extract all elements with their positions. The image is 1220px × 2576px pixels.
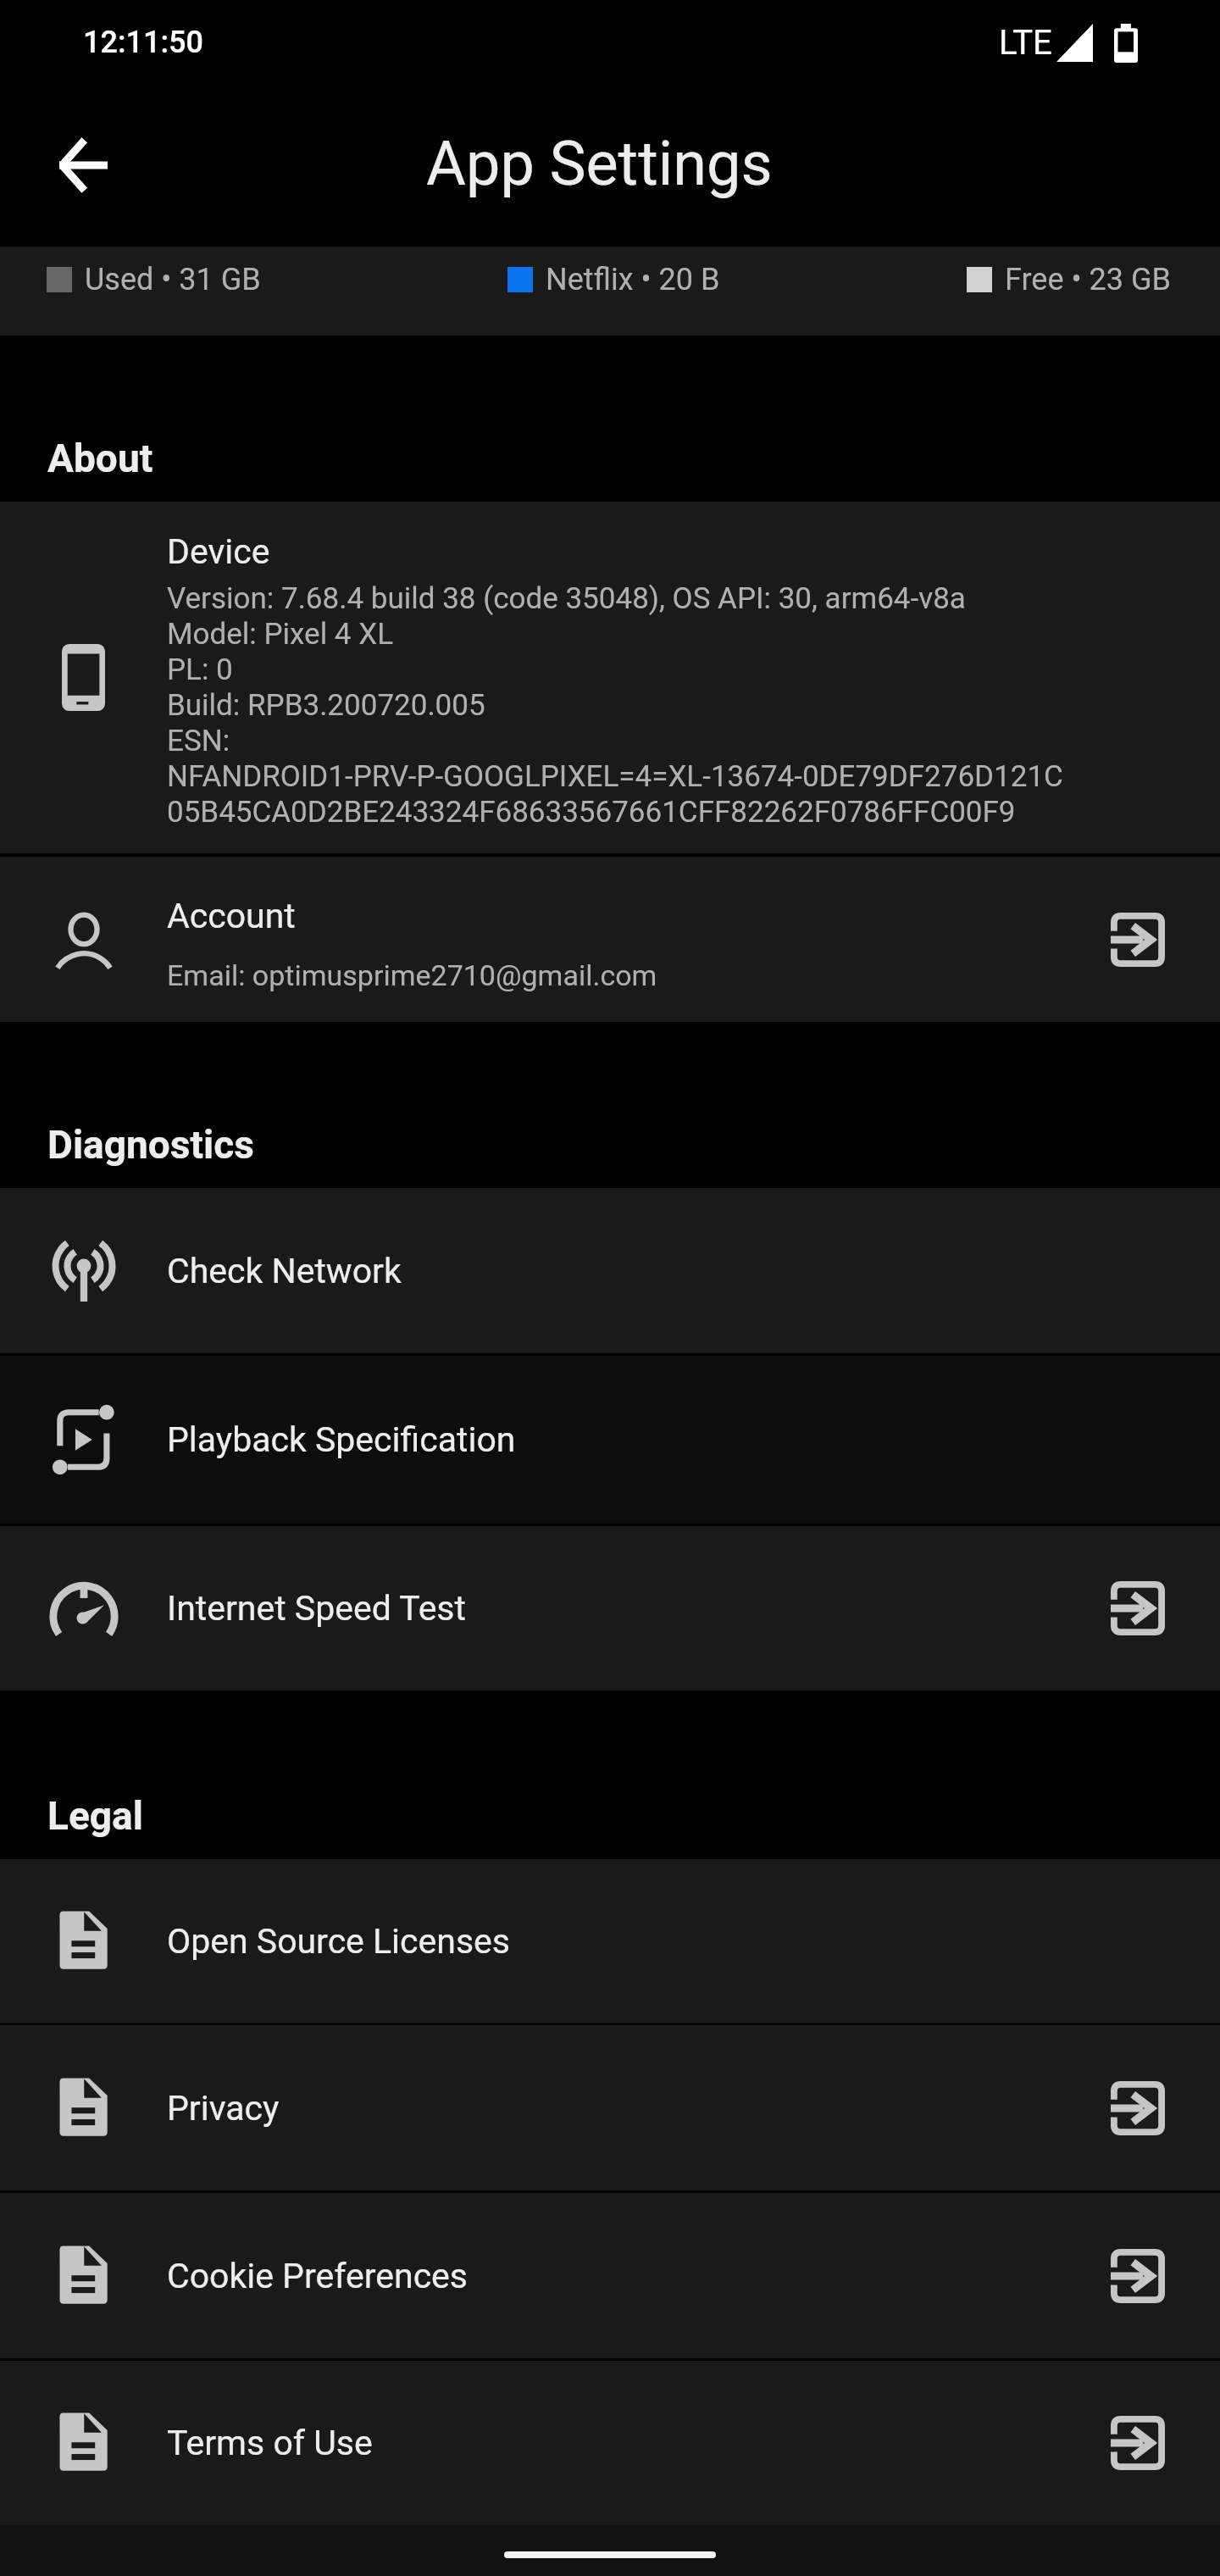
button[interactable]: Device [0, 502, 1220, 853]
staticText: Device [167, 531, 270, 572]
staticText: Cookie Preferences [167, 2256, 1107, 2296]
other: Open [1107, 2078, 1168, 2139]
button[interactable]: Privacy [0, 2025, 1220, 2190]
staticText: LTE [999, 23, 1052, 63]
staticText: Email: optimusprime2710@gmail.com [167, 958, 657, 992]
staticText: Terms of Use [167, 2423, 1107, 2463]
other: Open [1107, 2246, 1168, 2307]
button[interactable]: Cookie Preferences [0, 2193, 1220, 2358]
button[interactable]: Open Source Licenses [0, 1859, 1220, 2023]
button[interactable]: Account [0, 857, 1220, 1022]
staticText: Version: 7.68.4 build 38 (code 35048), O… [167, 580, 1063, 830]
staticText: About [47, 436, 153, 481]
staticText: Playback Specification [167, 1419, 1220, 1460]
staticText: Internet Speed Test [167, 1588, 1107, 1629]
staticText: Free • 23 GB [1005, 262, 1171, 297]
other: Open [1107, 909, 1168, 970]
staticText: Netflix • 20 B [546, 262, 720, 297]
button[interactable]: Terms of Use [0, 2361, 1220, 2525]
button[interactable]: Check Network [0, 1188, 1220, 1353]
staticText: 12:11:50 [83, 25, 203, 60]
other: Open [1107, 1578, 1168, 1639]
staticText: Legal [47, 1793, 143, 1839]
staticText: Diagnostics [47, 1122, 254, 1168]
button[interactable]: Playback Specification [0, 1356, 1220, 1524]
staticText: Used • 31 GB [85, 262, 261, 297]
staticText: Privacy [167, 2088, 1107, 2129]
other: Open [1107, 2412, 1168, 2473]
button[interactable]: Internet Speed Test [0, 1526, 1220, 1690]
staticText: Open Source Licenses [167, 1921, 1220, 1962]
button[interactable]: Back [34, 116, 132, 214]
staticText: Account [167, 896, 296, 936]
staticText: Check Network [167, 1251, 1220, 1291]
staticText: App Settings [426, 128, 773, 199]
